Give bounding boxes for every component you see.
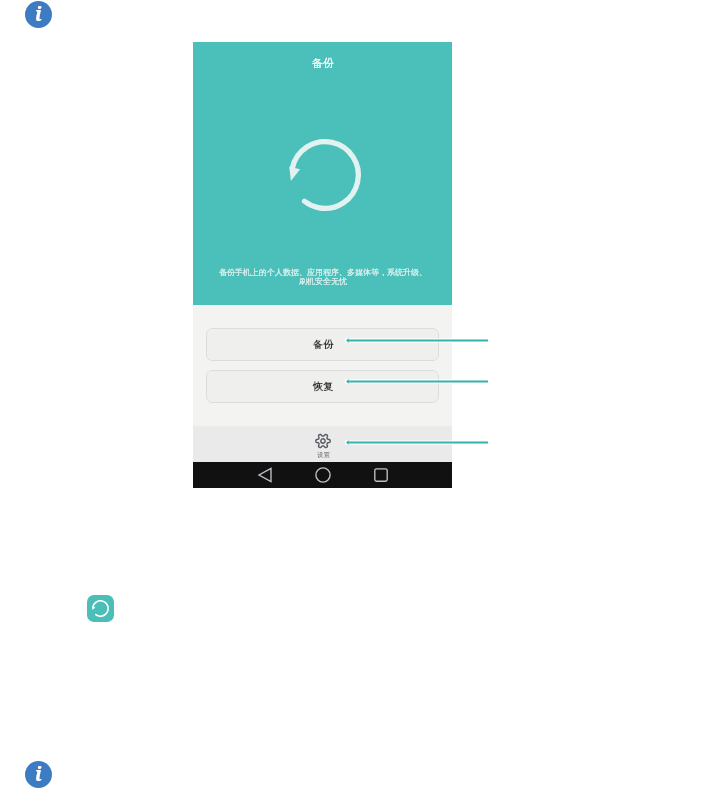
button[interactable]: Information: [25, 1, 52, 28]
button[interactable]: Backup app icon: [87, 595, 114, 622]
staticText: i: [35, 1, 42, 27]
button[interactable]: 设置: [295, 431, 351, 461]
staticText: 恢复: [313, 380, 333, 393]
button[interactable]: 恢复: [206, 370, 439, 403]
staticText: 设置: [317, 451, 330, 459]
staticText: i: [35, 761, 42, 787]
button[interactable]: Information: [25, 761, 52, 788]
button[interactable]: 备份: [206, 328, 439, 361]
staticText: 备份: [313, 338, 333, 351]
staticText: 备份手机上的个人数据、应用程序、多媒体等，系统升级、 刷机安全无忧: [203, 267, 443, 287]
staticText: 备份: [312, 56, 334, 70]
